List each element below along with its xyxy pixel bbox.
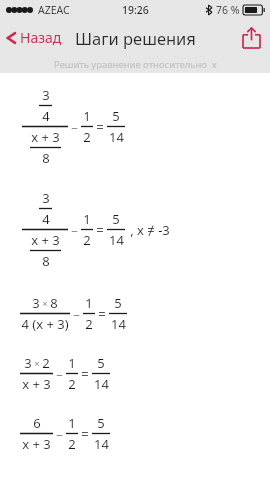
staticText: 5: [114, 294, 122, 312]
button[interactable]: 6: [0, 414, 270, 453]
staticText: –: [73, 305, 80, 323]
staticText: 5: [97, 354, 105, 372]
staticText: x + 3: [31, 128, 60, 146]
staticText: 8: [42, 149, 50, 167]
staticText: –: [71, 118, 78, 136]
staticText: 3: [42, 86, 50, 104]
staticText: 14: [109, 231, 124, 249]
staticText: –: [56, 425, 63, 443]
staticText: 4: [42, 210, 50, 228]
staticText: =: [96, 118, 104, 136]
staticText: 8: [50, 294, 58, 312]
staticText: 5: [112, 210, 120, 228]
staticText: ×: [34, 357, 40, 370]
staticText: AZEAC: [38, 3, 70, 17]
staticText: 14: [111, 315, 126, 333]
staticText: 14: [94, 375, 109, 393]
staticText: 5: [97, 414, 105, 432]
staticText: Назад: [20, 28, 62, 47]
button[interactable]: Share: [233, 22, 270, 54]
staticText: 14: [109, 128, 124, 146]
staticText: 76 %: [216, 3, 240, 17]
button[interactable]: 3: [0, 294, 270, 333]
button[interactable]: 3: [0, 86, 270, 167]
staticText: 1: [68, 354, 76, 372]
staticText: 1: [83, 210, 91, 228]
staticText: –: [56, 365, 63, 383]
staticText: 4: [42, 107, 50, 125]
staticText: 3: [24, 354, 32, 372]
staticText: 1: [85, 294, 93, 312]
staticText: 1: [68, 414, 76, 432]
staticText: x + 3: [22, 435, 51, 453]
staticText: 3: [42, 189, 50, 207]
button[interactable]: Назад: [0, 24, 70, 51]
staticText: 5: [112, 107, 120, 125]
staticText: 2: [83, 128, 91, 146]
staticText: 2: [68, 435, 76, 453]
staticText: –: [71, 221, 78, 239]
staticText: x + 3: [22, 375, 51, 393]
staticText: 2: [68, 375, 76, 393]
staticText: , x ≠ -3: [130, 221, 170, 239]
staticText: 2: [85, 315, 93, 333]
staticText: 2: [42, 354, 50, 372]
staticText: 14: [94, 435, 109, 453]
button[interactable]: 3: [0, 189, 270, 270]
staticText: 6: [33, 414, 41, 432]
staticText: 3: [32, 294, 40, 312]
button[interactable]: 3: [0, 354, 270, 393]
staticText: 1: [83, 107, 91, 125]
staticText: Шаги решения: [75, 27, 196, 49]
staticText: =: [96, 221, 104, 239]
staticText: 4 (x + 3): [21, 315, 69, 333]
staticText: Решить уравнение относительно x: [54, 58, 217, 71]
staticText: 8: [42, 252, 50, 270]
staticText: 19:26: [122, 3, 149, 17]
staticText: =: [98, 305, 106, 323]
staticText: =: [81, 365, 89, 383]
staticText: 2: [83, 231, 91, 249]
staticText: ×: [42, 297, 48, 310]
staticText: =: [81, 425, 89, 443]
staticText: x + 3: [31, 231, 60, 249]
